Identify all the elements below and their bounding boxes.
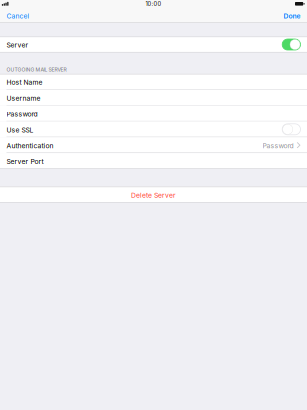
staticText: OUTGOING MAIL SERVER	[6, 66, 66, 73]
button[interactable]: Done	[277, 9, 307, 23]
staticText: 10:00	[145, 0, 161, 7]
staticText: Done	[283, 12, 300, 20]
staticText: Password	[263, 142, 294, 150]
button[interactable]: Server	[0, 37, 307, 52]
staticText: Server	[6, 41, 28, 49]
staticText: Password	[6, 110, 37, 118]
button[interactable]: Authentication	[0, 137, 307, 153]
button[interactable]: Use SSL	[0, 121, 307, 137]
staticText: Cancel	[6, 12, 29, 20]
button[interactable]: Delete Server	[0, 187, 307, 202]
staticText: Server Port	[6, 157, 43, 166]
staticText: Host Name	[6, 78, 42, 86]
staticText: Username	[6, 94, 40, 102]
button[interactable]: Cancel	[0, 9, 36, 23]
staticText: Authentication	[6, 142, 53, 150]
staticText: Use SSL	[6, 126, 33, 134]
staticText: Delete Server	[131, 191, 176, 199]
